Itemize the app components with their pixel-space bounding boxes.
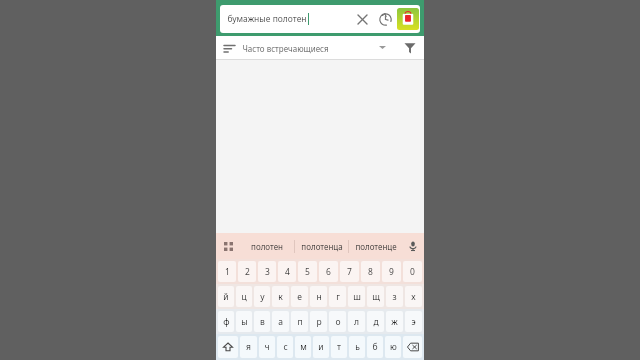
staticText: 8 [368, 266, 373, 278]
button[interactable]: у [254, 286, 270, 307]
button[interactable]: 3 [258, 261, 276, 282]
staticText: е [297, 291, 302, 303]
staticText: полотен [251, 241, 283, 252]
button[interactable]: 2 [238, 261, 256, 282]
button[interactable]: в [254, 311, 270, 332]
button[interactable]: ь [349, 336, 365, 358]
button[interactable]: полотенца [295, 233, 348, 259]
staticText: бумажные полотен [227, 13, 307, 25]
staticText: ч [264, 341, 270, 353]
staticText: 3 [265, 266, 270, 278]
staticText: полотенце [355, 241, 397, 252]
staticText: л [354, 316, 359, 328]
staticText: б [372, 341, 378, 353]
button[interactable]: а [272, 311, 289, 332]
button[interactable]: э [405, 311, 422, 332]
staticText: полотенца [301, 241, 343, 252]
staticText: в [260, 316, 265, 328]
staticText: 1 [225, 266, 230, 278]
button[interactable]: Shift [218, 336, 238, 358]
staticText: х [411, 291, 416, 303]
button[interactable]: о [329, 311, 346, 332]
button[interactable]: Clear [351, 8, 373, 30]
staticText: ц [241, 291, 247, 303]
staticText: 4 [285, 266, 290, 278]
staticText: з [392, 291, 397, 303]
button[interactable]: 8 [361, 261, 380, 282]
button[interactable]: Часто встречающиеся [242, 36, 396, 60]
staticText: ф [223, 316, 230, 328]
button[interactable]: 4 [278, 261, 296, 282]
button[interactable]: App [397, 8, 419, 30]
staticText: п [297, 316, 303, 328]
button[interactable]: ж [386, 311, 403, 332]
button[interactable]: 7 [340, 261, 359, 282]
button[interactable]: 1 [218, 261, 236, 282]
button[interactable]: 9 [382, 261, 401, 282]
staticText: 2 [245, 266, 250, 278]
staticText: ю [390, 341, 397, 353]
button[interactable]: ф [218, 311, 234, 332]
button[interactable]: Backspace [403, 336, 422, 358]
button[interactable]: бумажные полотен [220, 5, 351, 33]
staticText: 5 [305, 266, 310, 278]
button[interactable]: е [291, 286, 308, 307]
staticText: 7 [347, 266, 352, 278]
button[interactable]: б [367, 336, 383, 358]
staticText: с [283, 341, 288, 353]
button[interactable]: полотенце [349, 233, 402, 259]
button[interactable]: и [313, 336, 329, 358]
button[interactable]: Sort [216, 36, 242, 60]
button[interactable]: н [310, 286, 327, 307]
button[interactable]: к [272, 286, 289, 307]
button[interactable]: м [295, 336, 311, 358]
staticText: 0 [410, 266, 415, 278]
staticText: й [223, 291, 229, 303]
button[interactable]: ч [259, 336, 275, 358]
staticText: к [278, 291, 283, 303]
button[interactable]: р [310, 311, 327, 332]
staticText: ш [353, 291, 361, 303]
button[interactable]: с [277, 336, 293, 358]
button[interactable]: 0 [403, 261, 422, 282]
button[interactable]: ю [385, 336, 401, 358]
button[interactable]: щ [367, 286, 384, 307]
button[interactable]: ы [236, 311, 252, 332]
button[interactable]: х [405, 286, 422, 307]
staticText: щ [372, 291, 380, 303]
staticText: т [337, 341, 341, 353]
staticText: 6 [326, 266, 331, 278]
button[interactable]: Emoji [216, 233, 240, 259]
staticText: ы [241, 316, 248, 328]
staticText: э [411, 316, 416, 328]
staticText: а [278, 316, 283, 328]
staticText: ь [355, 341, 360, 353]
button[interactable]: Search history [373, 7, 397, 31]
button[interactable]: Voice input [402, 233, 424, 259]
staticText: н [316, 291, 322, 303]
button[interactable]: ц [236, 286, 252, 307]
button[interactable]: полотен [240, 233, 294, 259]
button[interactable]: т [331, 336, 347, 358]
staticText: г [336, 291, 340, 303]
staticText: у [260, 291, 265, 303]
staticText: д [373, 316, 379, 328]
staticText: р [316, 316, 322, 328]
staticText: я [246, 341, 251, 353]
staticText: и [318, 341, 324, 353]
button[interactable]: д [367, 311, 384, 332]
button[interactable]: 6 [319, 261, 338, 282]
button[interactable]: л [348, 311, 365, 332]
button[interactable]: п [291, 311, 308, 332]
staticText: Часто встречающиеся [242, 43, 329, 54]
button[interactable]: Filter [396, 36, 424, 60]
button[interactable]: я [240, 336, 257, 358]
button[interactable]: 5 [298, 261, 317, 282]
staticText: о [335, 316, 341, 328]
button[interactable]: ш [348, 286, 365, 307]
button[interactable]: з [386, 286, 403, 307]
button[interactable]: г [329, 286, 346, 307]
staticText: ж [391, 316, 398, 328]
button[interactable]: й [218, 286, 234, 307]
staticText: м [300, 341, 307, 353]
